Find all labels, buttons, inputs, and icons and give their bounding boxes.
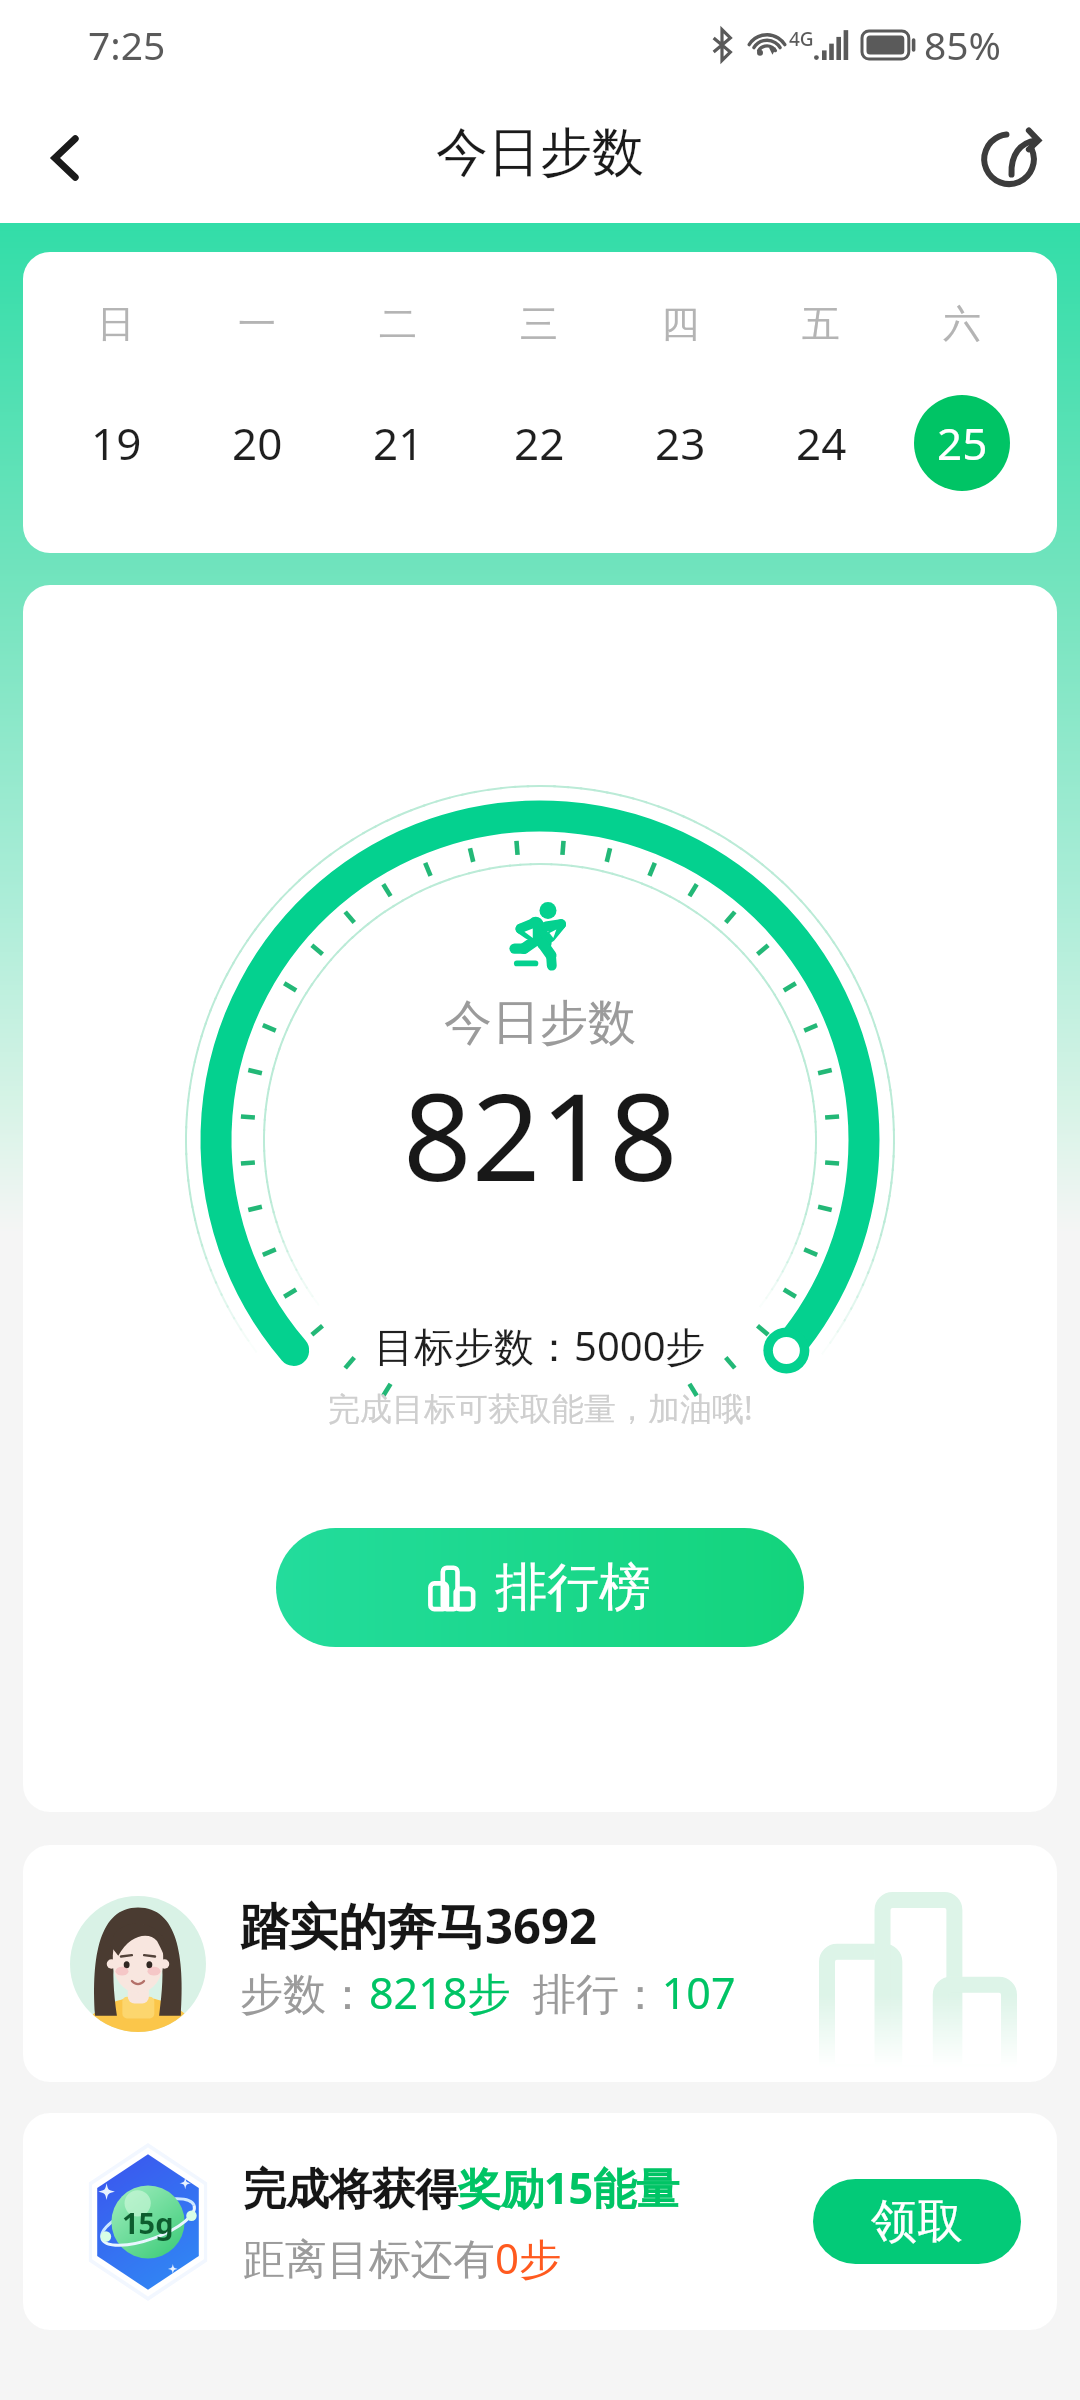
staticText: 距离目标还有0步 — [243, 2229, 562, 2286]
staticText: 目标步数：5000步 — [374, 1318, 706, 1373]
button[interactable]: 25 — [914, 395, 1010, 491]
staticText: 完成目标可获取能量，加油哦! — [328, 1386, 753, 1430]
staticText: 19 — [91, 413, 142, 473]
staticText: 7:25 — [88, 18, 166, 71]
staticText: 日 — [97, 300, 135, 348]
button[interactable]: 领取 — [813, 2179, 1021, 2264]
button[interactable]: Refresh — [974, 118, 1054, 198]
button[interactable]: 24 — [773, 395, 869, 491]
staticText: 排行榜 — [495, 1555, 651, 1621]
staticText: 三 — [520, 300, 558, 348]
staticText: 22 — [514, 413, 565, 473]
staticText: 25 — [937, 413, 988, 473]
button[interactable]: 踏实的奔马3692 — [23, 1845, 1057, 2082]
staticText: 四 — [661, 300, 699, 348]
staticText: 步数：8218步 排行：107 — [240, 1963, 736, 2022]
staticText: 二 — [379, 300, 417, 348]
staticText: 4G — [789, 26, 814, 52]
button[interactable]: 22 — [491, 395, 587, 491]
button[interactable]: 21 — [350, 395, 446, 491]
staticText: 今日步数 — [444, 993, 636, 1053]
button[interactable]: 20 — [209, 395, 305, 491]
staticText: 8218 — [403, 1053, 678, 1216]
staticText: 领取 — [871, 2193, 963, 2251]
button[interactable]: 19 — [68, 395, 164, 491]
staticText: 20 — [232, 413, 283, 473]
button[interactable]: 排行榜 — [276, 1528, 804, 1647]
button[interactable]: Back — [26, 118, 106, 198]
staticText: 今日步数 — [436, 120, 644, 186]
staticText: 踏实的奔马3692 — [240, 1892, 598, 1959]
staticText: 完成将获得奖励15能量 — [243, 2158, 680, 2217]
staticText: 24 — [796, 413, 847, 473]
staticText: 15g — [122, 2203, 174, 2242]
staticText: 85% — [924, 18, 1002, 71]
button[interactable]: 23 — [632, 395, 728, 491]
staticText: 六 — [943, 300, 981, 348]
staticText: 23 — [655, 413, 706, 473]
staticText: 五 — [802, 300, 840, 348]
staticText: 一 — [238, 300, 276, 348]
staticText: 21 — [373, 413, 424, 473]
